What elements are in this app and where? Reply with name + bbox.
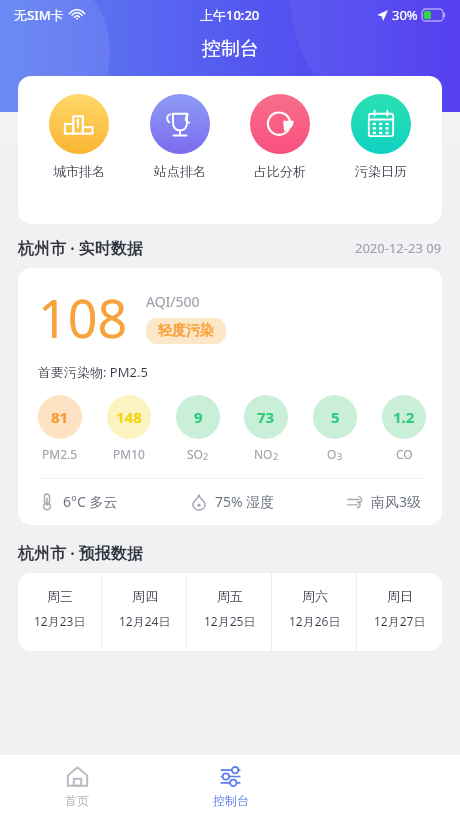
button[interactable]: 108 xyxy=(18,268,442,525)
staticText: 12月23日 xyxy=(34,613,86,629)
button[interactable]: 周三 xyxy=(18,573,102,651)
staticText: AQI/500 xyxy=(146,292,200,311)
button[interactable]: 6°C 多云 xyxy=(38,492,118,511)
staticText: 周四 xyxy=(132,588,158,604)
button[interactable]: 周六 xyxy=(272,573,357,651)
staticText: 周五 xyxy=(217,588,243,604)
button[interactable]: 周四 xyxy=(102,573,187,651)
button[interactable]: 南风3级 xyxy=(346,492,422,511)
button[interactable]: 周五 xyxy=(187,573,272,651)
staticText: 杭州市 · 预报数据 xyxy=(18,542,143,564)
staticText: PM2.5 xyxy=(42,446,78,462)
staticText: 南风3级 xyxy=(371,492,422,511)
staticText: 12月27日 xyxy=(374,613,426,629)
staticText: 2 xyxy=(203,450,209,462)
staticText: 1.2 xyxy=(393,407,415,427)
staticText: 30% xyxy=(392,6,418,24)
staticText: 杭州市 · 实时数据 xyxy=(18,237,143,259)
staticText: 148 xyxy=(116,407,142,427)
staticText: 12月24日 xyxy=(119,613,171,629)
staticText: SO xyxy=(187,446,203,462)
staticText: 73 xyxy=(257,407,275,427)
button[interactable]: 占比分析 xyxy=(240,94,320,179)
staticText: 81 xyxy=(51,407,69,427)
staticText: 城市排名 xyxy=(53,163,105,179)
staticText: 首页 xyxy=(65,793,89,808)
staticText: 周三 xyxy=(47,588,73,604)
staticText: CO xyxy=(396,446,413,462)
staticText: 污染日历 xyxy=(355,163,407,179)
button[interactable]: 控制台 xyxy=(154,755,307,817)
button[interactable]: 75% 湿度 xyxy=(190,492,275,511)
staticText: PM10 xyxy=(113,446,145,462)
staticText: 12月26日 xyxy=(289,613,341,629)
button[interactable]: 周日 xyxy=(357,573,442,651)
staticText: 9 xyxy=(194,407,203,427)
staticText: 3 xyxy=(337,450,343,462)
staticText: 轻度污染 xyxy=(158,322,214,340)
button[interactable]: 控制台 xyxy=(202,37,259,61)
staticText: 站点排名 xyxy=(154,163,206,179)
staticText: 2020-12-23 09 xyxy=(355,239,442,257)
staticText: 上午10:20 xyxy=(200,6,260,24)
button[interactable]: 污染日历 xyxy=(341,94,421,179)
staticText: 控制台 xyxy=(213,793,249,808)
staticText: 首要污染物: PM2.5 xyxy=(38,363,148,381)
button[interactable]: 城市排名 xyxy=(39,94,119,179)
staticText: 6°C 多云 xyxy=(63,492,118,511)
staticText: 周六 xyxy=(302,588,328,604)
staticText: 周日 xyxy=(387,588,413,604)
staticText: 无SIM卡 xyxy=(14,6,64,24)
staticText: 75% 湿度 xyxy=(215,492,275,511)
button[interactable]: 站点排名 xyxy=(140,94,220,179)
staticText: O xyxy=(327,446,337,462)
staticText: NO xyxy=(254,446,273,462)
staticText: 108 xyxy=(38,282,128,353)
staticText: 占比分析 xyxy=(254,163,306,179)
button[interactable]: 首页 xyxy=(0,755,154,817)
staticText: 12月25日 xyxy=(204,613,256,629)
staticText: 2 xyxy=(273,450,279,462)
staticText: 5 xyxy=(331,407,340,427)
